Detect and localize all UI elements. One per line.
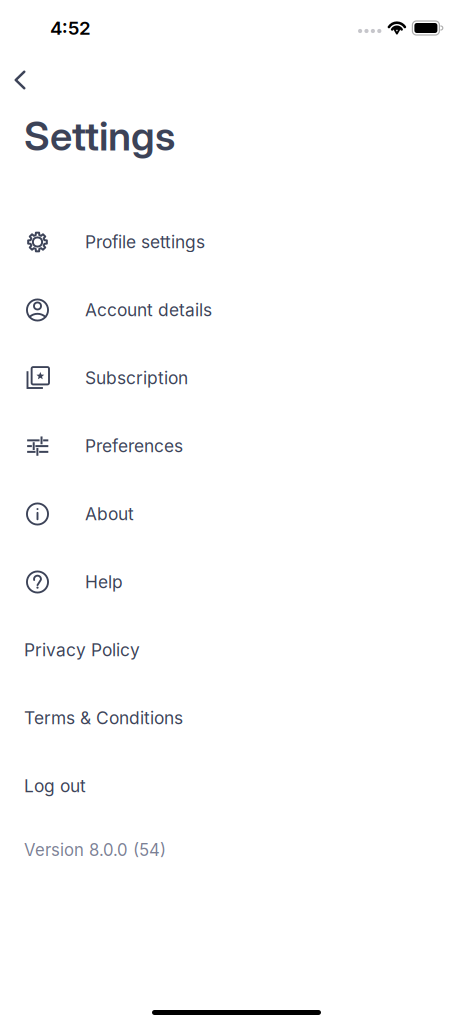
button[interactable]: Subscription xyxy=(0,344,473,412)
button[interactable]: Privacy Policy xyxy=(0,616,473,684)
button[interactable]: About xyxy=(0,480,473,548)
staticText: Terms & Conditions xyxy=(24,707,183,728)
staticText: Settings xyxy=(24,112,175,160)
button[interactable]: Account details xyxy=(0,276,473,344)
staticText: 4:52 xyxy=(50,17,91,39)
button[interactable]: Profile settings xyxy=(0,208,473,276)
button[interactable]: Terms & Conditions xyxy=(0,684,473,752)
button[interactable]: Back xyxy=(0,56,40,104)
staticText: About xyxy=(85,503,134,524)
button[interactable]: Help xyxy=(0,548,473,616)
staticText: Preferences xyxy=(85,435,183,456)
staticText: Subscription xyxy=(85,367,188,388)
staticText: Account details xyxy=(85,299,212,320)
staticText: Log out xyxy=(24,775,86,796)
button[interactable]: Preferences xyxy=(0,412,473,480)
button[interactable]: Log out xyxy=(0,752,473,820)
staticText: Help xyxy=(85,571,123,592)
staticText: Privacy Policy xyxy=(24,639,140,660)
staticText: Version 8.0.0 (54) xyxy=(24,840,166,860)
staticText: Profile settings xyxy=(85,231,205,252)
